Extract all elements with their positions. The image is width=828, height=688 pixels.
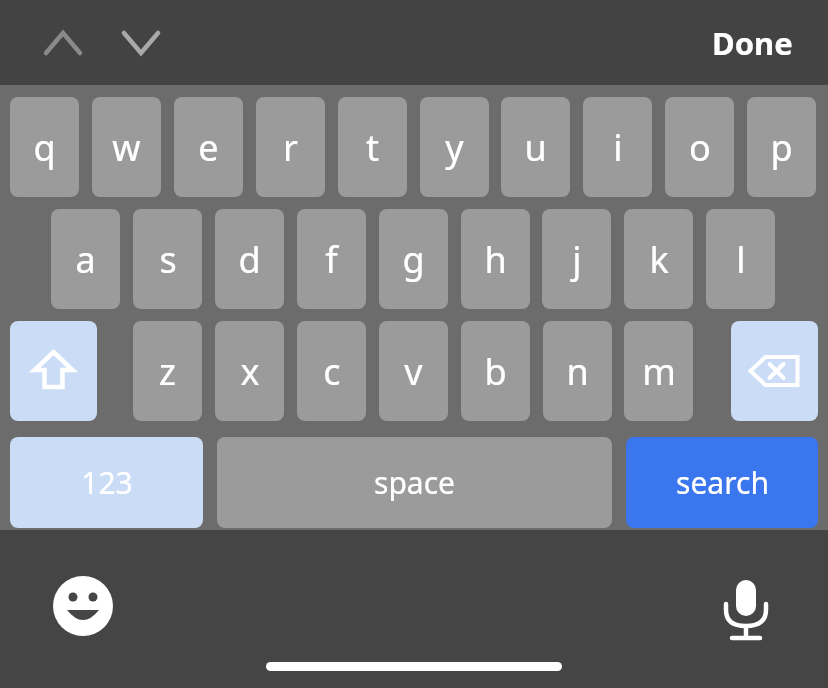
button[interactable]: Dictate [710, 570, 782, 642]
staticText: f [325, 235, 338, 284]
button[interactable]: o [665, 97, 734, 197]
button[interactable]: c [297, 321, 366, 421]
staticText: z [159, 347, 176, 396]
staticText: t [366, 123, 379, 172]
staticText: g [402, 235, 425, 284]
staticText: 123 [81, 462, 133, 503]
staticText: s [159, 235, 177, 284]
button[interactable]: Next field [108, 13, 174, 73]
button[interactable]: n [543, 321, 612, 421]
button[interactable]: Previous field [30, 13, 96, 73]
button[interactable]: k [624, 209, 693, 309]
button[interactable]: d [215, 209, 284, 309]
button[interactable]: j [542, 209, 611, 309]
staticText: b [484, 347, 507, 396]
button[interactable]: z [133, 321, 202, 421]
button[interactable]: search [626, 437, 818, 528]
staticText: i [613, 123, 623, 172]
button[interactable]: i [583, 97, 652, 197]
staticText: u [524, 123, 547, 172]
staticText: h [484, 235, 507, 284]
staticText: space [374, 462, 455, 503]
staticText: w [112, 123, 141, 172]
button[interactable]: p [747, 97, 816, 197]
staticText: y [445, 123, 464, 172]
button[interactable]: y [420, 97, 489, 197]
staticText: c [323, 347, 341, 396]
staticText: d [238, 235, 261, 284]
button[interactable]: a [51, 209, 120, 309]
staticText: x [240, 347, 260, 396]
button[interactable]: h [461, 209, 530, 309]
button[interactable]: 123 [10, 437, 203, 528]
button[interactable]: u [501, 97, 570, 197]
button[interactable]: v [379, 321, 448, 421]
button[interactable]: f [297, 209, 366, 309]
staticText: e [198, 123, 219, 172]
button[interactable]: Emoji [47, 570, 119, 642]
staticText: q [33, 123, 56, 172]
staticText: r [283, 123, 298, 172]
button[interactable]: q [10, 97, 79, 197]
button[interactable]: Backspace [731, 321, 818, 421]
button[interactable]: e [174, 97, 243, 197]
button[interactable]: Shift [10, 321, 97, 421]
button[interactable]: w [92, 97, 161, 197]
button[interactable]: g [379, 209, 448, 309]
staticText: n [566, 347, 589, 396]
button[interactable]: b [461, 321, 530, 421]
staticText: search [676, 462, 769, 503]
staticText: Done [712, 22, 793, 64]
staticText: a [75, 235, 96, 284]
button[interactable]: t [338, 97, 407, 197]
staticText: v [404, 347, 423, 396]
staticText: j [572, 235, 582, 284]
staticText: m [642, 347, 676, 396]
button[interactable]: space [217, 437, 612, 528]
button[interactable]: x [215, 321, 284, 421]
staticText: p [770, 123, 793, 172]
button[interactable]: s [133, 209, 202, 309]
button[interactable]: m [624, 321, 693, 421]
button[interactable]: l [706, 209, 775, 309]
staticText: o [689, 123, 711, 172]
button[interactable]: r [256, 97, 325, 197]
staticText: l [736, 235, 746, 284]
button[interactable]: Done [700, 18, 805, 68]
staticText: k [649, 235, 669, 284]
